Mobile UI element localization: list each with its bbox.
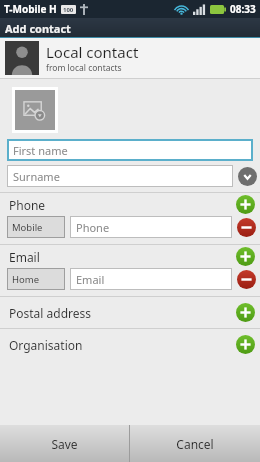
button[interactable]: Phone [70,216,232,238]
button[interactable]: Add Organisation [235,334,256,355]
button[interactable]: Postal address [9,297,256,328]
button[interactable]: Add Postal address [235,302,256,323]
button[interactable]: Remove Phone [236,217,257,238]
button[interactable]: Surname [7,165,233,187]
staticText: Add contact [5,21,71,36]
staticText: First name [13,143,68,158]
button[interactable]: Organisation [9,329,256,360]
button[interactable]: Mobile [7,216,65,238]
staticText: Mobile [12,221,43,234]
button[interactable]: Add photo [15,90,55,130]
staticText: 100 [63,6,74,14]
button[interactable]: First name [7,139,253,161]
staticText: Home [12,273,40,286]
staticText: Cancel [176,436,214,452]
button[interactable]: Add Phone [235,194,256,215]
button[interactable]: Add Email [235,246,256,267]
staticText: Phone [9,197,46,213]
button[interactable]: Cancel [130,425,260,462]
button[interactable]: Expand name fields [237,166,257,186]
staticText: Organisation [9,337,83,353]
staticText: Postal address [9,305,92,321]
staticText: T-Mobile H [4,2,57,16]
staticText: Save [51,436,78,452]
staticText: Email [76,272,105,287]
button[interactable]: Email [70,268,232,290]
staticText: Local contact [46,42,139,62]
staticText: from local contacts [46,62,122,74]
button[interactable]: Local contact [0,38,260,78]
button[interactable]: Save [0,425,129,462]
staticText: Phone [76,220,110,235]
button[interactable]: Remove Email [236,269,257,290]
staticText: Email [9,249,40,265]
staticText: Surname [13,169,60,184]
staticText: 08:33 [230,2,256,16]
button[interactable]: Home [7,268,65,290]
